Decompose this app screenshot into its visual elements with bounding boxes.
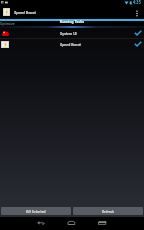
button[interactable]: Kill Selected bbox=[1, 207, 71, 215]
button[interactable]: Refresh bbox=[73, 207, 143, 215]
button[interactable]: Recent apps bbox=[92, 217, 114, 230]
staticText: Speed Boost bbox=[14, 10, 36, 15]
staticText: Running Tasks bbox=[0, 19, 144, 24]
staticText: 4:35 bbox=[133, 0, 141, 5]
staticText: Kill Selected bbox=[26, 209, 46, 214]
staticText: Refresh bbox=[102, 209, 115, 214]
button[interactable]: Speed Boost bbox=[0, 39, 144, 49]
staticText: System UI bbox=[60, 31, 77, 36]
button[interactable]: System UI bbox=[0, 28, 144, 38]
button[interactable]: Back bbox=[30, 217, 52, 230]
button[interactable]: Home bbox=[61, 217, 83, 230]
staticText: Speed Boost bbox=[60, 42, 81, 47]
button[interactable]: More options bbox=[130, 8, 144, 19]
button[interactable]: Optimize bbox=[0, 21, 15, 26]
